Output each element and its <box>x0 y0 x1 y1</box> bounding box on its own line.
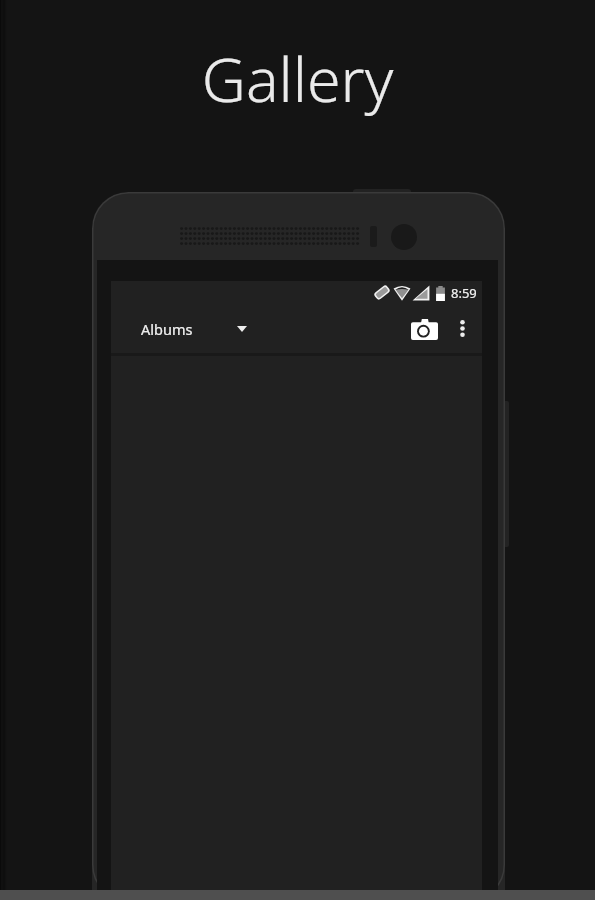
button[interactable]: More options <box>449 306 475 351</box>
button[interactable]: Albums <box>111 306 263 351</box>
staticText: Gallery <box>0 37 595 120</box>
staticText: Albums <box>141 319 193 339</box>
staticText: 8:59 <box>451 284 477 302</box>
button[interactable]: Camera <box>401 307 448 352</box>
